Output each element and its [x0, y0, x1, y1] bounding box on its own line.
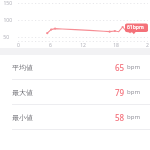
staticText: bpm — [127, 63, 140, 71]
staticText: 18 — [113, 42, 119, 48]
button[interactable]: 平均値 — [0, 55, 150, 79]
staticText: bpm — [127, 113, 140, 121]
staticText: 58 — [115, 112, 125, 123]
staticText: 平均値 — [12, 63, 33, 72]
staticText: 最大値 — [12, 88, 33, 97]
staticText: 0 — [17, 42, 20, 48]
staticText: 50 — [3, 34, 9, 41]
staticText: 65 — [115, 62, 125, 73]
button[interactable]: Heart rate chart — [0, 0, 150, 48]
staticText: 100 — [3, 17, 12, 24]
staticText: 最小値 — [12, 113, 33, 122]
staticText: 6 — [49, 42, 52, 48]
staticText: 150 — [3, 0, 12, 7]
staticText: bpm — [127, 88, 140, 96]
staticText: 79 — [115, 87, 125, 98]
staticText: 12 — [80, 42, 86, 48]
button[interactable]: 最小値 — [0, 105, 150, 129]
staticText: 24 — [145, 42, 150, 48]
button[interactable]: 最大値 — [0, 80, 150, 104]
staticText: 61bpm — [127, 24, 144, 31]
